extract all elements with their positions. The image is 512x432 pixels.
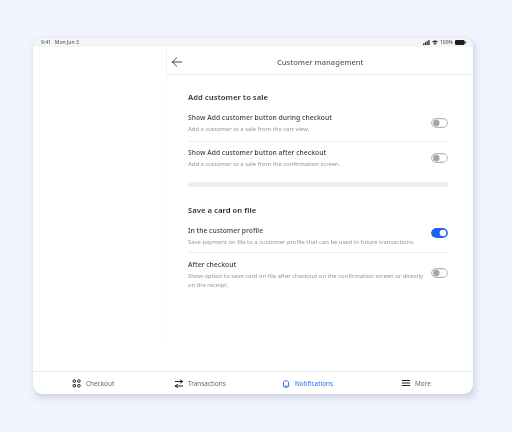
staticText: Add customer to sale (188, 92, 269, 102)
button[interactable]: Switch off (431, 153, 448, 163)
button[interactable]: After checkout (188, 260, 403, 269)
button[interactable]: More (362, 372, 470, 394)
staticText: Save payment on file to a customer profi… (188, 238, 425, 246)
staticText: Checkout (86, 379, 115, 388)
button[interactable]: Transactions (147, 372, 254, 394)
button[interactable]: Switch off (431, 118, 448, 128)
button[interactable]: Show Add customer button during checkout (188, 113, 403, 122)
staticText: Customer management (277, 57, 364, 67)
button[interactable]: Notifications (254, 372, 362, 394)
staticText: Transactions (188, 379, 226, 388)
staticText: More (415, 379, 431, 388)
button[interactable]: Show Add customer button after checkout (188, 148, 403, 157)
staticText: Notifications (295, 379, 334, 388)
staticText: 9:41 Mon Jun 3 (41, 39, 79, 46)
button[interactable]: Switch off (431, 268, 448, 278)
button[interactable]: In the customer profile (188, 226, 403, 235)
button[interactable]: Switch on (431, 228, 448, 238)
button[interactable]: Checkout (40, 372, 147, 394)
staticText: Add a customer to a sale from the cart v… (188, 125, 425, 133)
staticText: Add a customer to a sale from the confir… (188, 160, 425, 168)
staticText: Show option to save card on file after c… (188, 272, 425, 289)
button[interactable]: Back (168, 53, 186, 71)
staticText: 100% (440, 39, 453, 46)
staticText: Save a card on file (188, 205, 257, 215)
